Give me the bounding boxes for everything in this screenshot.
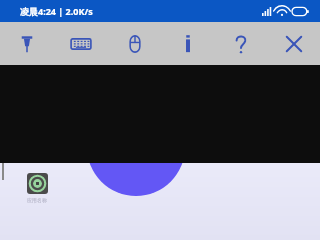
button[interactable]: Keyboard — [54, 22, 108, 65]
button[interactable]: Pin — [0, 22, 54, 65]
button[interactable]: Mouse — [108, 22, 161, 65]
button[interactable]: Close — [267, 22, 320, 65]
button[interactable]: Help — [214, 22, 267, 65]
button[interactable]: Info — [161, 22, 214, 65]
staticText: 应用名称 — [27, 197, 47, 203]
staticText: 凌晨4:24 | 2.0K/s — [20, 5, 93, 17]
button[interactable]: 应用名称 — [22, 173, 52, 203]
